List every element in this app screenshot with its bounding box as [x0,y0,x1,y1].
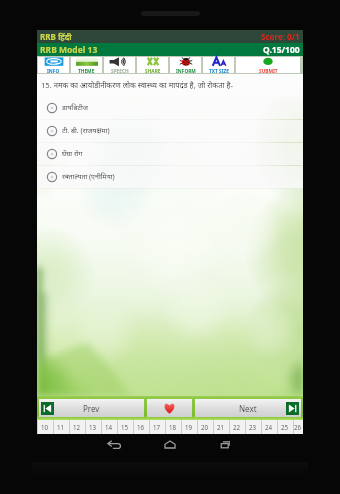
button[interactable]: SHARE [137,57,168,73]
button[interactable]: SPEECH [104,57,135,73]
button[interactable]: THEME [71,57,102,73]
staticText: 24 [265,423,273,431]
button[interactable]: Next [195,399,301,417]
staticText: 25 [281,423,289,431]
staticText: रक्ताल्पता (एनीमिया) [62,172,115,182]
staticText: SUBMIT [259,68,278,73]
button[interactable]: 21 [213,420,229,434]
button[interactable]: 15 [117,420,133,434]
staticText: टी. बी. (राजयक्षमा) [62,126,110,136]
button[interactable]: TXT SIZE [203,57,234,73]
staticText: डायबिटीज [62,103,88,113]
button[interactable]: 12 [69,420,85,434]
staticText: Prev [83,403,100,414]
staticText: 21 [217,423,225,431]
staticText: INFORM [176,68,196,73]
button[interactable]: 25 [277,420,293,434]
staticText: 12 [73,423,81,431]
button[interactable]: 13 [85,420,101,434]
button[interactable]: Home [159,436,181,452]
button[interactable]: 18 [165,420,181,434]
button[interactable]: INFO [38,57,69,73]
button[interactable]: 19 [181,420,197,434]
staticText: घेंघा रोग [62,149,83,159]
button[interactable]: Favourite [147,399,192,417]
staticText: Next [239,403,257,414]
staticText: SHARE [145,68,161,73]
staticText: 13 [89,423,97,431]
staticText: 16 [137,423,145,431]
staticText: 20 [201,423,209,431]
button[interactable]: 16 [133,420,149,434]
button[interactable]: 22 [229,420,245,434]
button[interactable]: 10 [37,420,53,434]
staticText: THEME [78,68,95,73]
staticText: 11 [57,423,65,431]
button[interactable]: 23 [245,420,261,434]
staticText: Score: 0/1 [261,31,300,42]
staticText: 10 [41,423,49,431]
button[interactable]: 11 [53,420,69,434]
button[interactable]: Back [103,436,125,452]
button[interactable]: INFORM [170,57,201,73]
button[interactable]: डायबिटीज [37,97,303,119]
button[interactable]: घेंघा रोग [37,143,303,165]
button[interactable]: 20 [197,420,213,434]
button[interactable]: 24 [261,420,277,434]
staticText: 19 [185,423,193,431]
button[interactable]: 14 [101,420,117,434]
staticText: SPEECH [111,68,129,73]
button[interactable]: टी. बी. (राजयक्षमा) [37,120,303,142]
staticText: 17 [153,423,161,431]
staticText: 14 [105,423,113,431]
button[interactable]: Recent apps [215,436,237,452]
button[interactable]: Prev [39,399,144,417]
staticText: 18 [169,423,177,431]
staticText: RRB हिंदी [40,31,72,42]
staticText: 15 [121,423,129,431]
staticText: 26 [294,423,302,431]
staticText: 23 [249,423,257,431]
staticText: 22 [233,423,241,431]
staticText: TXT SIZE [209,68,229,73]
button[interactable]: SUBMIT [236,57,300,73]
button[interactable]: 26 [293,420,303,434]
staticText: INFO [47,68,60,73]
button[interactable]: 17 [149,420,165,434]
staticText: 15. नमक का आयोडीनीकरण लोक स्वास्थ्य का म… [41,80,233,90]
button[interactable]: रक्ताल्पता (एनीमिया) [37,166,303,188]
staticText: RRB Model 13 [40,44,98,56]
staticText: Q.15/100 [263,44,300,56]
